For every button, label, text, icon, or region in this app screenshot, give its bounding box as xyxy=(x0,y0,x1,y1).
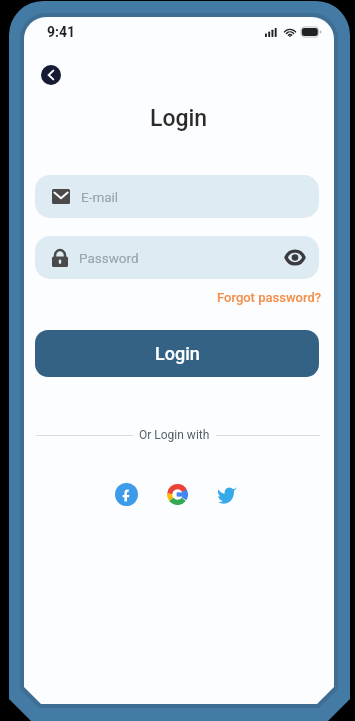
button[interactable]: Login with Google xyxy=(161,478,193,510)
button[interactable]: Forgot password? xyxy=(215,287,324,308)
staticText: Login xyxy=(155,343,200,364)
button[interactable]: Password xyxy=(35,236,319,279)
staticText: Password xyxy=(79,250,139,266)
button[interactable]: E-mail xyxy=(35,175,319,218)
button[interactable]: Login with Facebook xyxy=(110,478,142,510)
staticText: 9:41 xyxy=(47,24,76,40)
button[interactable]: Login with Twitter xyxy=(211,478,243,510)
button[interactable]: Show password xyxy=(285,248,304,267)
button[interactable]: Back xyxy=(41,65,61,85)
staticText: Login xyxy=(150,105,208,132)
staticText: E-mail xyxy=(81,189,119,205)
staticText: Or Login with xyxy=(139,428,210,442)
staticText: Forgot password? xyxy=(217,290,322,305)
button[interactable]: Login xyxy=(35,330,319,377)
